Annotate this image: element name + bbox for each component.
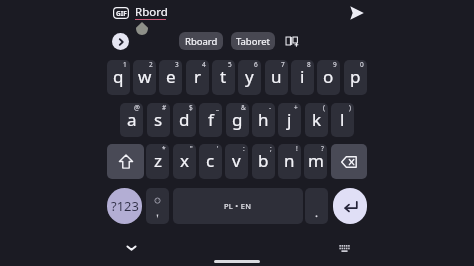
staticText: 0 (360, 60, 364, 69)
staticText: g (232, 108, 243, 131)
staticText: b (258, 149, 269, 172)
staticText: 2 (149, 60, 153, 69)
staticText: l (340, 108, 345, 131)
button[interactable]: w (133, 60, 156, 95)
staticText: q (113, 65, 124, 88)
staticText: p (350, 65, 361, 88)
staticText: ! (296, 144, 298, 153)
button[interactable]: g (226, 103, 249, 137)
button[interactable]: Switch keyboard (334, 238, 354, 258)
button[interactable]: u (265, 60, 288, 95)
staticText: - (269, 103, 272, 112)
button[interactable]: Backspace (331, 144, 367, 179)
button[interactable]: PL • EN (173, 188, 303, 224)
button[interactable]: s (147, 103, 170, 137)
staticText: a (127, 108, 137, 131)
button[interactable]: q (107, 60, 130, 95)
button[interactable]: Period (305, 188, 328, 224)
button[interactable]: t (212, 60, 235, 95)
staticText: Rbord (135, 4, 168, 20)
button[interactable]: n (278, 144, 301, 179)
staticText: 6 (254, 60, 258, 69)
staticText: ? (321, 144, 324, 153)
staticText: s (154, 108, 163, 131)
staticText: x (180, 149, 189, 172)
button[interactable]: j (278, 103, 301, 137)
staticText: m (308, 149, 324, 172)
staticText: 1 (123, 60, 127, 69)
staticText: k (312, 108, 322, 131)
button[interactable]: d (173, 103, 196, 137)
staticText: y (245, 65, 254, 88)
staticText: f (208, 108, 214, 131)
button[interactable]: Hide keyboard (121, 238, 141, 258)
staticText: + (294, 103, 298, 112)
button[interactable]: c (199, 144, 222, 179)
button[interactable]: b (252, 144, 275, 179)
button[interactable]: Add to dictionary (283, 32, 301, 50)
staticText: 5 (228, 60, 232, 69)
button[interactable]: f (199, 103, 222, 137)
staticText: _ (216, 103, 219, 112)
button[interactable]: p (344, 60, 367, 95)
button[interactable]: k (305, 103, 328, 137)
button[interactable]: Taboret (231, 32, 275, 50)
button[interactable]: x (173, 144, 196, 179)
staticText: t (220, 65, 227, 88)
button[interactable]: m (304, 144, 327, 179)
staticText: w (138, 65, 152, 88)
staticText: @ (134, 103, 140, 112)
staticText: 3 (175, 60, 179, 69)
button[interactable]: Enter (333, 188, 367, 224)
button[interactable]: l (331, 103, 354, 137)
staticText: z (154, 149, 162, 172)
staticText: v (232, 149, 241, 172)
button[interactable]: Shift (107, 144, 144, 179)
button[interactable]: y (238, 60, 261, 95)
staticText: n (284, 149, 295, 172)
button[interactable]: i (291, 60, 314, 95)
staticText: # (162, 103, 167, 112)
button[interactable]: h (252, 103, 275, 137)
staticText: ) (349, 103, 351, 112)
staticText: Rboard (185, 35, 218, 48)
staticText: Taboret (236, 35, 270, 48)
staticText: 9 (333, 60, 337, 69)
button[interactable]: GIF (113, 7, 129, 19)
staticText: 8 (307, 60, 311, 69)
staticText: " (190, 144, 193, 153)
staticText: o (323, 65, 334, 88)
staticText: & (241, 103, 246, 112)
staticText: r (194, 65, 202, 88)
button[interactable]: a (120, 103, 143, 137)
button[interactable]: Expand suggestions (112, 33, 129, 50)
staticText: PL • EN (224, 201, 252, 211)
staticText: ( (323, 103, 325, 112)
button[interactable]: e (159, 60, 182, 95)
staticText: d (179, 108, 190, 131)
staticText: j (287, 108, 292, 131)
staticText: i (300, 65, 305, 88)
staticText: ' (217, 144, 219, 153)
button[interactable]: ?123 (107, 188, 142, 224)
staticText: ?123 (111, 197, 139, 215)
staticText: h (258, 108, 269, 131)
staticText: GIF (116, 9, 127, 18)
staticText: u (271, 65, 282, 88)
staticText: c (206, 149, 215, 172)
button[interactable]: o (317, 60, 340, 95)
button[interactable]: Rboard (179, 32, 223, 50)
button[interactable]: r (186, 60, 209, 95)
button[interactable]: Emoji (146, 188, 169, 224)
button[interactable]: Send (345, 1, 369, 25)
staticText: e (166, 65, 176, 88)
staticText: 7 (281, 60, 285, 69)
staticText: 4 (202, 60, 206, 69)
staticText: $ (189, 103, 193, 112)
staticText: * (162, 144, 166, 153)
staticText: ; (270, 144, 272, 153)
staticText: : (243, 144, 245, 153)
button[interactable]: v (225, 144, 248, 179)
button[interactable]: z (146, 144, 169, 179)
